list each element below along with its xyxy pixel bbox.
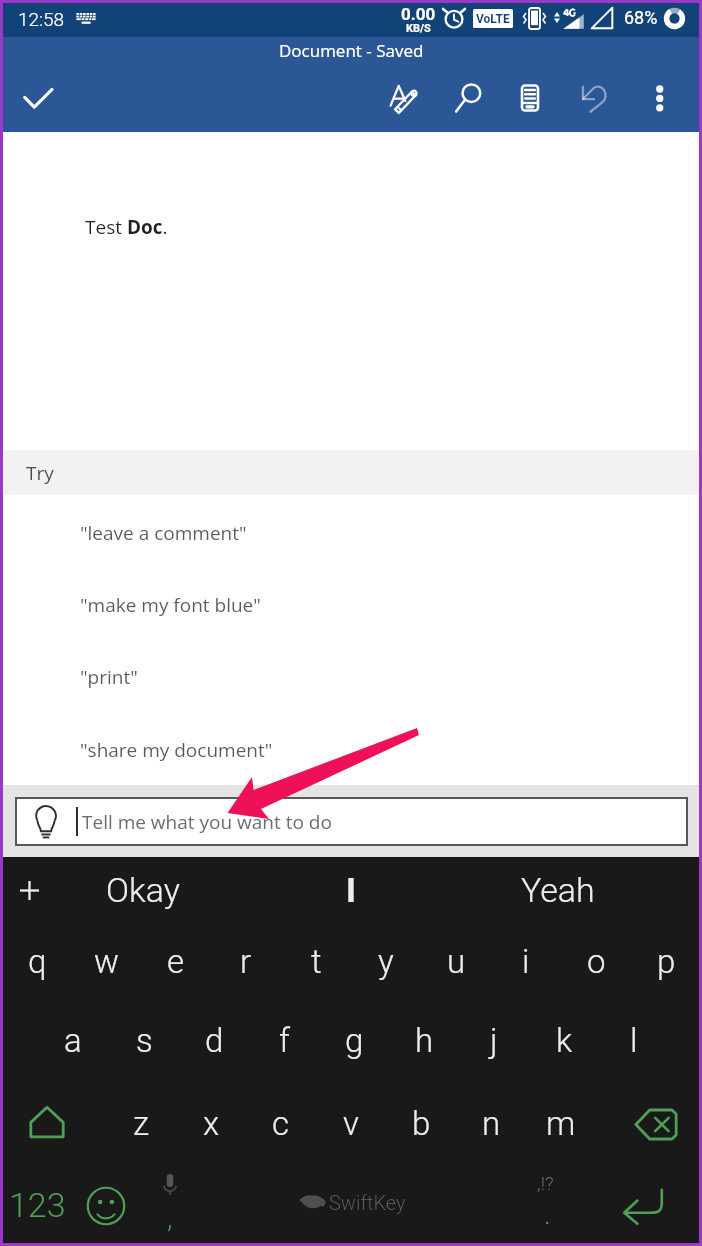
- button[interactable]: w: [71, 927, 141, 995]
- staticText: m: [546, 1104, 576, 1143]
- button[interactable]: "leave a comment": [3, 508, 699, 558]
- button[interactable]: I: [301, 860, 401, 920]
- button[interactable]: Okay: [93, 860, 193, 920]
- button[interactable]: q: [2, 927, 72, 995]
- button[interactable]: r: [211, 927, 281, 995]
- staticText: z: [133, 1104, 150, 1143]
- staticText: k: [556, 1021, 573, 1060]
- staticText: g: [345, 1021, 364, 1060]
- button[interactable]: "share my document": [3, 725, 699, 775]
- staticText: o: [587, 942, 606, 981]
- staticText: "make my font blue": [80, 592, 261, 618]
- staticText: v: [343, 1104, 359, 1143]
- staticText: u: [447, 942, 466, 981]
- staticText: Yeah: [521, 870, 595, 910]
- staticText: Document - Saved: [279, 39, 424, 62]
- staticText: ,!?: [537, 1172, 554, 1194]
- staticText: 0.00: [401, 4, 436, 24]
- staticText: 12:58: [18, 8, 65, 30]
- staticText: h: [415, 1021, 434, 1060]
- button[interactable]: Done: [9, 73, 67, 131]
- button[interactable]: b: [386, 1089, 456, 1157]
- button[interactable]: j: [459, 1006, 529, 1074]
- staticText: ,: [167, 1202, 173, 1235]
- staticText: 123: [9, 1185, 66, 1225]
- staticText: e: [167, 942, 185, 981]
- staticText: w: [94, 942, 119, 981]
- staticText: "leave a comment": [80, 520, 247, 546]
- staticText: I: [346, 870, 356, 910]
- button[interactable]: k: [529, 1006, 599, 1074]
- button[interactable]: z: [106, 1089, 176, 1157]
- staticText: c: [272, 1104, 290, 1143]
- button[interactable]: n: [456, 1089, 526, 1157]
- button[interactable]: Yeah: [508, 860, 608, 920]
- staticText: l: [630, 1021, 638, 1060]
- button[interactable]: "print": [3, 652, 699, 702]
- staticText: Test Doc.: [85, 214, 168, 240]
- button[interactable]: Add: [0, 860, 58, 920]
- button[interactable]: h: [389, 1006, 459, 1074]
- button[interactable]: Undo: [564, 68, 623, 127]
- button[interactable]: a: [38, 1006, 108, 1074]
- button[interactable]: Space: [208, 1172, 498, 1232]
- staticText: s: [136, 1021, 153, 1060]
- button[interactable]: Search: [438, 67, 500, 129]
- button[interactable]: v: [316, 1089, 386, 1157]
- button[interactable]: f: [249, 1006, 319, 1074]
- button[interactable]: Shift: [7, 1089, 87, 1157]
- staticText: "print": [80, 664, 138, 690]
- button[interactable]: 123: [0, 1174, 80, 1236]
- staticText: 68%: [624, 7, 658, 28]
- button[interactable]: u: [421, 927, 491, 995]
- staticText: VoLTE: [476, 12, 510, 26]
- button[interactable]: Emoji: [76, 1176, 136, 1236]
- button[interactable]: y: [351, 927, 421, 995]
- staticText: "share my document": [80, 737, 273, 763]
- button[interactable]: Enter: [601, 1176, 685, 1236]
- staticText: a: [64, 1021, 82, 1060]
- staticText: Okay: [106, 870, 180, 910]
- button[interactable]: Tell me what you want to do: [15, 797, 688, 846]
- staticText: y: [378, 942, 394, 981]
- button[interactable]: d: [179, 1006, 249, 1074]
- staticText: p: [657, 942, 676, 981]
- staticText: b: [412, 1104, 431, 1143]
- button[interactable]: ,!?: [503, 1161, 587, 1237]
- staticText: Tell me what you want to do: [82, 809, 332, 835]
- button[interactable]: i: [491, 927, 561, 995]
- staticText: n: [482, 1104, 501, 1143]
- button[interactable]: s: [109, 1006, 179, 1074]
- staticText: d: [205, 1021, 224, 1060]
- button[interactable]: Mobile view: [500, 68, 560, 128]
- button[interactable]: t: [281, 927, 351, 995]
- button[interactable]: o: [561, 927, 631, 995]
- button[interactable]: p: [631, 927, 701, 995]
- staticText: r: [240, 942, 252, 981]
- staticText: f: [279, 1021, 290, 1060]
- button[interactable]: c: [246, 1089, 316, 1157]
- staticText: q: [28, 942, 47, 981]
- button[interactable]: More options: [632, 75, 688, 131]
- button[interactable]: g: [319, 1006, 389, 1074]
- button[interactable]: Format text: [376, 69, 433, 126]
- button[interactable]: l: [599, 1006, 669, 1074]
- staticText: j: [490, 1021, 498, 1060]
- staticText: Try: [26, 460, 54, 486]
- staticText: KB/S: [406, 22, 431, 35]
- button[interactable]: "make my font blue": [3, 580, 699, 630]
- staticText: i: [522, 942, 530, 981]
- button[interactable]: Backspace: [616, 1090, 696, 1158]
- staticText: SwiftKey: [329, 1191, 406, 1214]
- button[interactable]: e: [141, 927, 211, 995]
- staticText: x: [203, 1104, 220, 1143]
- button[interactable]: x: [176, 1089, 246, 1157]
- button[interactable]: m: [526, 1089, 596, 1157]
- staticText: t: [311, 942, 322, 981]
- staticText: .: [544, 1198, 551, 1231]
- button[interactable]: ,: [140, 1162, 202, 1238]
